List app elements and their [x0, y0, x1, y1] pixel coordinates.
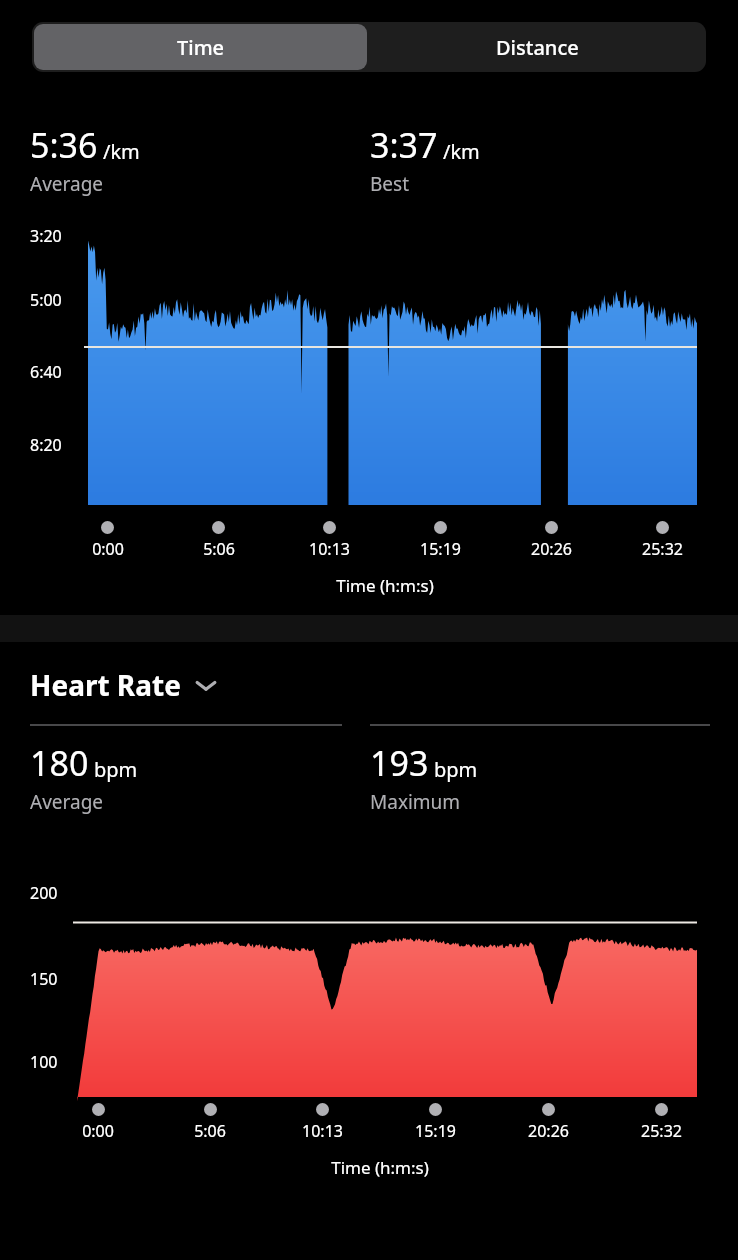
- staticText: 0:00: [82, 1120, 114, 1142]
- staticText: 193: [370, 740, 429, 786]
- staticText: 10:13: [302, 1120, 343, 1142]
- staticText: Average: [30, 789, 104, 815]
- staticText: 25:32: [641, 1120, 682, 1142]
- staticText: 200: [30, 882, 58, 904]
- staticText: 3:37: [370, 122, 438, 168]
- staticText: 5:06: [194, 1120, 226, 1142]
- staticText: 15:19: [415, 1120, 456, 1142]
- staticText: Heart Rate: [30, 666, 181, 704]
- staticText: /km: [443, 138, 480, 165]
- staticText: Time (h:m:s): [42, 1156, 718, 1179]
- staticText: 150: [30, 968, 58, 990]
- staticText: /km: [103, 138, 140, 165]
- staticText: 5:00: [30, 289, 62, 311]
- staticText: Time (h:m:s): [52, 574, 718, 597]
- staticText: 6:40: [30, 361, 62, 383]
- staticText: 8:20: [30, 434, 62, 456]
- staticText: 0:00: [92, 538, 124, 560]
- staticText: Maximum: [370, 789, 461, 815]
- button[interactable]: Distance: [369, 22, 706, 72]
- staticText: 180: [30, 740, 89, 786]
- staticText: 15:19: [420, 538, 461, 560]
- staticText: 25:32: [642, 538, 683, 560]
- staticText: 5:36: [30, 122, 98, 168]
- staticText: Average: [30, 171, 104, 197]
- staticText: Best: [370, 171, 410, 197]
- staticText: Distance: [496, 34, 579, 61]
- staticText: 5:06: [203, 538, 235, 560]
- staticText: 20:26: [531, 538, 572, 560]
- staticText: 20:26: [528, 1120, 569, 1142]
- staticText: 3:20: [30, 225, 62, 247]
- staticText: Time: [177, 34, 225, 61]
- staticText: 100: [30, 1051, 58, 1073]
- button[interactable]: Heart Rate, collapse section: [30, 666, 219, 704]
- staticText: bpm: [94, 756, 138, 783]
- staticText: bpm: [434, 756, 478, 783]
- staticText: 10:13: [309, 538, 350, 560]
- button[interactable]: Time: [34, 24, 367, 70]
